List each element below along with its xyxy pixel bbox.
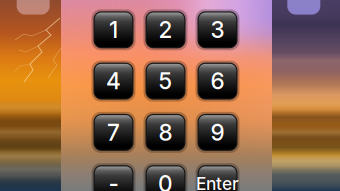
staticText: 6 xyxy=(210,67,224,95)
staticText: 4 xyxy=(106,67,121,95)
button[interactable]: 4 xyxy=(90,60,136,103)
button[interactable]: 9 xyxy=(194,111,240,154)
button[interactable]: 8 xyxy=(142,111,188,154)
staticText: Enter xyxy=(196,173,239,191)
button[interactable]: - xyxy=(90,162,136,191)
staticText: 3 xyxy=(210,16,224,43)
staticText: 9 xyxy=(210,119,224,146)
button[interactable]: 6 xyxy=(194,60,240,103)
staticText: 7 xyxy=(107,119,120,146)
staticText: 8 xyxy=(158,119,172,146)
staticText: - xyxy=(108,170,118,191)
button[interactable]: 1 xyxy=(90,8,136,51)
button[interactable]: 5 xyxy=(142,60,188,103)
button[interactable]: 3 xyxy=(194,8,240,51)
staticText: 2 xyxy=(158,16,172,43)
button[interactable]: 7 xyxy=(90,111,136,154)
staticText: 5 xyxy=(158,67,172,95)
staticText: 1 xyxy=(109,16,118,43)
button[interactable]: Enter xyxy=(194,162,240,191)
button[interactable]: 2 xyxy=(142,8,188,51)
staticText: 0 xyxy=(158,170,173,191)
button[interactable]: 0 xyxy=(142,162,188,191)
